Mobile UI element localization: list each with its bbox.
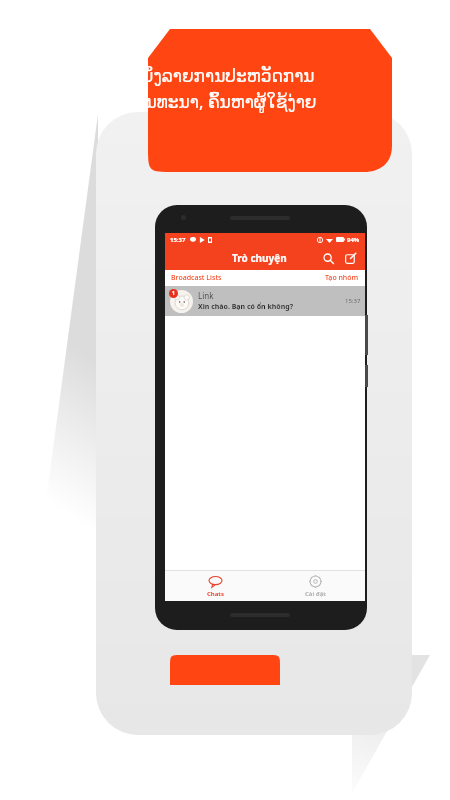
button[interactable]: Cài đặt	[265, 571, 365, 601]
staticText: Xin chào. Bạn có ổn không?	[198, 302, 294, 312]
staticText: 94%	[347, 236, 360, 244]
staticText: 15:37	[170, 236, 186, 244]
staticText: Chats	[207, 590, 224, 598]
staticText: Link	[198, 290, 214, 301]
staticText: ສົນທະນາ, ຄົ້ນຫາຜູ້ໃຊ້ງ່າຍ	[133, 90, 317, 113]
staticText: ເບິ່ງລາຍການປະຫວັດການ	[136, 66, 315, 86]
button[interactable]: Broadcast Lists	[171, 273, 222, 283]
button[interactable]: New message	[341, 249, 359, 267]
staticText: Trò chuyện	[232, 251, 287, 265]
staticText: 15:37	[345, 297, 361, 305]
button[interactable]: Search	[319, 249, 337, 267]
button[interactable]: Chats	[165, 571, 265, 601]
staticText: 1	[172, 290, 175, 297]
button[interactable]: 1	[165, 286, 365, 316]
button[interactable]: Tạo nhóm	[325, 273, 359, 283]
staticText: Cài đặt	[305, 590, 326, 598]
